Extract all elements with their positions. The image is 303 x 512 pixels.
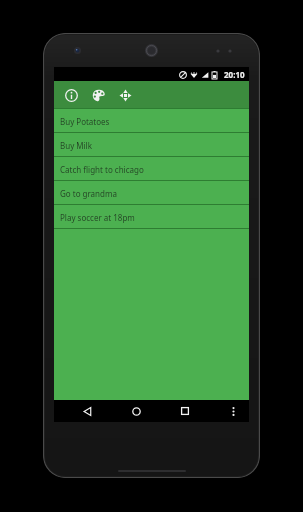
staticText: Play soccer at 18pm xyxy=(60,212,135,223)
staticText: Buy Milk xyxy=(60,140,92,151)
staticText: Go to grandma xyxy=(60,188,117,199)
button[interactable]: Back xyxy=(76,400,98,422)
button[interactable]: Reorder tasks xyxy=(114,84,136,106)
button[interactable]: Buy Potatoes xyxy=(54,109,249,133)
button[interactable]: Catch flight to chicago xyxy=(54,157,249,181)
button[interactable]: Buy Milk xyxy=(54,133,249,157)
button[interactable]: Home xyxy=(125,400,147,422)
button[interactable]: Recent apps xyxy=(174,400,196,422)
button[interactable]: More options xyxy=(223,401,243,421)
button[interactable]: About xyxy=(60,84,82,106)
button[interactable]: Change color xyxy=(87,84,109,106)
staticText: Buy Potatoes xyxy=(60,116,110,127)
button[interactable]: Go to grandma xyxy=(54,181,249,205)
staticText: 20:10 xyxy=(224,69,245,80)
button[interactable]: Play soccer at 18pm xyxy=(54,205,249,229)
staticText: Catch flight to chicago xyxy=(60,164,144,175)
